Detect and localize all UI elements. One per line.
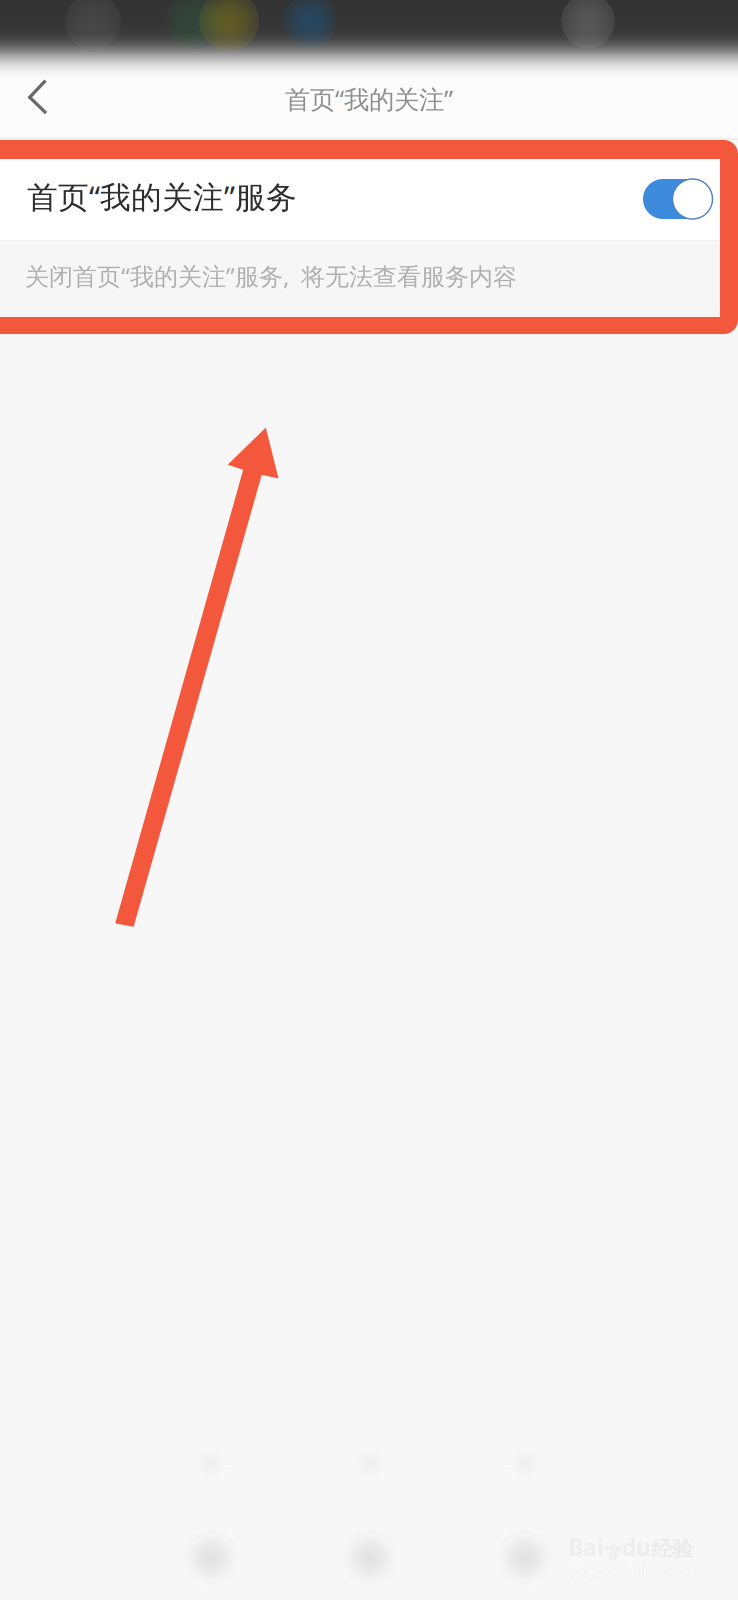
staticText: Bai — [568, 1532, 604, 1562]
staticText: 经验 — [651, 1536, 693, 1562]
staticText: 首页“我的关注” — [285, 82, 453, 116]
button[interactable]: Back — [0, 58, 76, 140]
button[interactable]: 首页“我的关注”服务 — [0, 159, 720, 240]
staticText: 关闭首页“我的关注”服务, 将无法查看服务内容 — [25, 260, 517, 292]
staticText: 首页“我的关注”服务 — [27, 176, 297, 217]
staticText: du — [622, 1532, 651, 1562]
